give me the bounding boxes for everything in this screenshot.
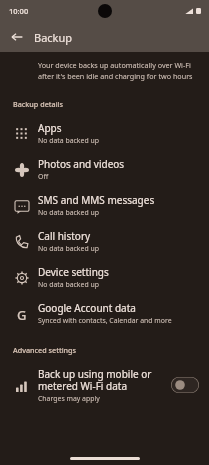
button[interactable]: Back up using mobile or metered Wi-Fi da… — [171, 377, 199, 393]
staticText: Charges may apply — [38, 394, 100, 403]
button[interactable]: Call history — [0, 223, 209, 259]
staticText: Apps — [38, 121, 62, 135]
staticText: Call history — [38, 229, 91, 243]
staticText: No data backed up — [38, 280, 99, 289]
staticText: No data backed up — [38, 136, 99, 145]
button[interactable]: SMS and MMS messages — [0, 187, 209, 223]
button[interactable]: Photos and videos — [0, 151, 209, 187]
button[interactable]: Apps — [0, 115, 209, 151]
staticText: Backup — [34, 30, 73, 45]
staticText: No data backed up — [38, 208, 99, 217]
button[interactable]: Back — [6, 26, 28, 48]
staticText: 10:00 — [9, 6, 29, 16]
staticText: Advanced settings — [13, 345, 77, 355]
staticText: Your device backs up automatically over … — [38, 60, 193, 81]
staticText: SMS and MMS messages — [38, 193, 155, 207]
button[interactable]: Device settings — [0, 259, 209, 295]
staticText: No data backed up — [38, 244, 99, 253]
staticText: G — [17, 306, 27, 322]
staticText: Synced with contacts, Calendar and more — [38, 316, 172, 325]
staticText: Off — [38, 172, 49, 181]
button[interactable]: Back up using mobile or metered Wi-Fi da… — [0, 361, 209, 409]
staticText: Device settings — [38, 265, 109, 279]
staticText: Google Account data — [38, 301, 136, 315]
staticText: Back up using mobile or metered Wi-Fi da… — [38, 367, 152, 393]
staticText: Backup details — [13, 99, 64, 109]
staticText: Photos and videos — [38, 157, 125, 171]
button[interactable]: G — [0, 295, 209, 331]
